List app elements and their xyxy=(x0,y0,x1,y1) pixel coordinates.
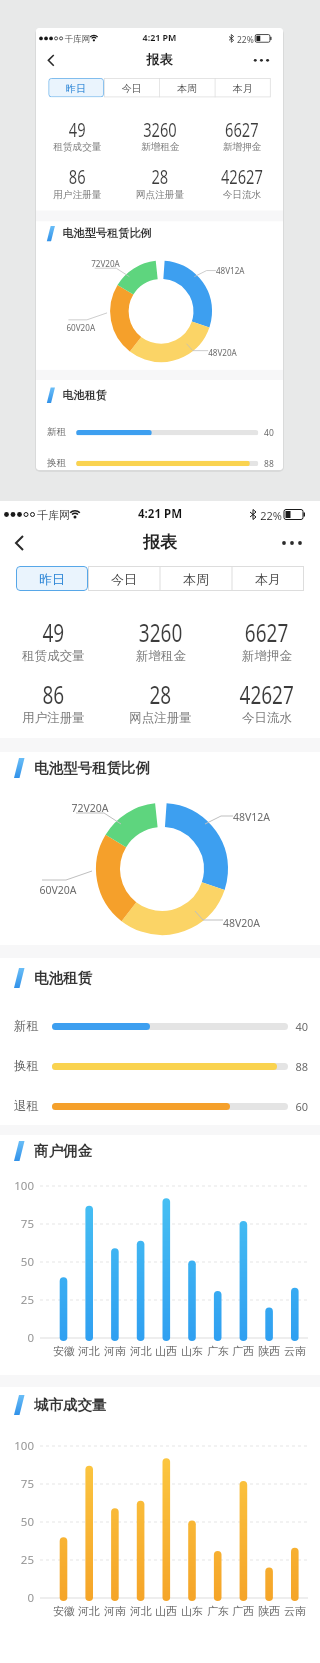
staticText: 租赁成交量 xyxy=(22,648,85,664)
staticText: 75 xyxy=(20,1476,34,1492)
staticText: 40 xyxy=(264,427,274,438)
staticText: 86 xyxy=(69,163,86,190)
staticText: 新增押金 xyxy=(223,141,261,153)
staticText: 山东 xyxy=(181,1604,203,1618)
button[interactable]: 本周 xyxy=(160,566,232,591)
staticText: 100 xyxy=(14,1178,34,1194)
staticText: 42627 xyxy=(239,677,294,711)
staticText: 河北 xyxy=(78,1344,100,1358)
staticText: 河北 xyxy=(130,1604,152,1618)
staticText: 3260 xyxy=(139,615,183,649)
staticText: 86 xyxy=(42,677,64,711)
button[interactable] xyxy=(4,532,40,562)
staticText: 山西 xyxy=(155,1604,177,1618)
staticText: 0 xyxy=(27,1330,34,1346)
staticText: 28 xyxy=(149,677,171,711)
staticText: 河南 xyxy=(104,1344,126,1358)
staticText: 广东 xyxy=(207,1344,229,1358)
staticText: 城市成交量 xyxy=(34,1396,107,1414)
button[interactable]: 今日 xyxy=(88,566,160,591)
staticText: 28 xyxy=(151,163,168,190)
staticText: 广东 xyxy=(207,1604,229,1618)
staticText: 25 xyxy=(20,1552,34,1568)
staticText: 本月 xyxy=(233,82,253,94)
staticText: 用户注册量 xyxy=(53,189,102,201)
staticText: 25 xyxy=(20,1292,34,1308)
staticText: 4:21 PM xyxy=(142,32,176,44)
staticText: 48V20A xyxy=(223,916,261,930)
staticText: 88 xyxy=(295,1059,308,1074)
staticText: 昨日 xyxy=(39,571,65,587)
staticText: 100 xyxy=(14,1438,34,1454)
staticText: 报表 xyxy=(146,52,173,68)
staticText: 今日 xyxy=(122,82,142,94)
staticText: 本月 xyxy=(255,571,281,587)
staticText: 电池型号租赁比例 xyxy=(62,227,152,241)
staticText: 本周 xyxy=(177,82,197,94)
staticText: 云南 xyxy=(284,1604,306,1618)
staticText: 安徽 xyxy=(53,1344,75,1358)
staticText: 电池租赁 xyxy=(62,388,107,402)
staticText: 48V20A xyxy=(208,347,237,358)
staticText: 新增押金 xyxy=(242,648,292,664)
staticText: 本周 xyxy=(183,571,209,587)
button[interactable]: 本周 xyxy=(159,78,215,97)
staticText: 河北 xyxy=(78,1604,100,1618)
staticText: 6627 xyxy=(245,615,289,649)
staticText: 报表 xyxy=(143,532,177,553)
staticText: 用户注册量 xyxy=(22,710,85,726)
staticText: 72V20A xyxy=(91,259,120,270)
staticText: 50 xyxy=(20,1514,34,1530)
staticText: 昨日 xyxy=(66,82,86,94)
staticText: 新增租金 xyxy=(136,648,186,664)
staticText: 22% xyxy=(237,33,254,45)
staticText: 新增租金 xyxy=(141,141,180,153)
staticText: 河南 xyxy=(104,1604,126,1618)
staticText: 商户佣金 xyxy=(34,1142,92,1160)
staticText: 42627 xyxy=(221,163,263,190)
staticText: 50 xyxy=(20,1254,34,1270)
staticText: 云南 xyxy=(284,1344,306,1358)
staticText: 陕西 xyxy=(258,1344,280,1358)
staticText: 换租 xyxy=(47,457,66,469)
staticText: 75 xyxy=(20,1216,34,1232)
button[interactable]: 本月 xyxy=(215,78,271,97)
staticText: 60 xyxy=(295,1099,308,1114)
staticText: 广西 xyxy=(232,1604,254,1618)
staticText: 49 xyxy=(69,116,86,142)
staticText: 22% xyxy=(260,508,282,523)
staticText: 60V20A xyxy=(66,322,95,333)
staticText: 网点注册量 xyxy=(129,710,192,726)
staticText: 千库网 xyxy=(65,33,90,44)
button[interactable]: 今日 xyxy=(104,78,159,97)
staticText: 千库网 xyxy=(37,508,70,522)
staticText: 48V12A xyxy=(216,266,245,277)
staticText: 今日流水 xyxy=(242,710,292,726)
staticText: 40 xyxy=(295,1019,308,1034)
button[interactable] xyxy=(39,52,67,75)
staticText: 电池租赁 xyxy=(34,969,92,987)
staticText: 49 xyxy=(42,615,64,649)
staticText: 88 xyxy=(264,458,274,469)
staticText: 陕西 xyxy=(258,1604,280,1618)
staticText: 网点注册量 xyxy=(136,189,184,201)
staticText: 山西 xyxy=(155,1344,177,1358)
staticText: 0 xyxy=(27,1590,34,1606)
staticText: 换租 xyxy=(14,1058,39,1074)
button[interactable]: 昨日 xyxy=(48,78,104,97)
staticText: 今日 xyxy=(111,571,137,587)
staticText: 广西 xyxy=(232,1344,254,1358)
button[interactable] xyxy=(252,57,274,63)
staticText: 新租 xyxy=(47,426,66,438)
staticText: 72V20A xyxy=(71,801,109,815)
button[interactable] xyxy=(280,539,308,547)
staticText: 河北 xyxy=(130,1344,152,1358)
button[interactable]: 本月 xyxy=(232,566,304,591)
staticText: 租赁成交量 xyxy=(53,141,102,153)
staticText: 60V20A xyxy=(39,883,77,897)
button[interactable]: 昨日 xyxy=(16,566,88,591)
staticText: 电池型号租赁比例 xyxy=(34,759,150,777)
staticText: 新租 xyxy=(14,1018,39,1034)
staticText: 48V12A xyxy=(233,810,271,824)
staticText: 4:21 PM xyxy=(138,506,182,522)
